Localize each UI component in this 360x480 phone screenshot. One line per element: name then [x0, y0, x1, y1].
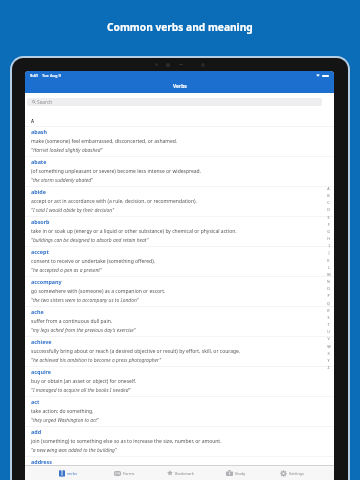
- staticText: E: [327, 215, 330, 220]
- staticText: B: [327, 193, 330, 198]
- staticText: L: [328, 265, 330, 270]
- button[interactable]: Settings: [264, 466, 320, 480]
- staticText: "my legs ached from the previous day's e…: [31, 327, 136, 334]
- staticText: take in or soak up (energy or a liquid o…: [31, 228, 237, 235]
- button[interactable]: accompany: [25, 277, 334, 306]
- staticText: "I said I would abide by their decision": [31, 207, 115, 214]
- staticText: F: [328, 222, 330, 227]
- staticText: G: [327, 229, 330, 234]
- staticText: add: [31, 428, 42, 435]
- staticText: "I managed to acquire all the books I ne…: [31, 387, 131, 394]
- staticText: Z: [327, 365, 330, 370]
- staticText: N: [327, 279, 330, 284]
- button[interactable]: Bookmark: [152, 466, 208, 480]
- staticText: U: [327, 329, 330, 334]
- staticText: I: [328, 243, 330, 248]
- staticText: R: [327, 308, 330, 313]
- staticText: Q: [327, 301, 330, 306]
- staticText: take action; do something.: [31, 408, 94, 415]
- staticText: Forms: [123, 471, 135, 476]
- staticText: Search: [37, 99, 53, 106]
- staticText: acquire: [31, 368, 52, 375]
- button[interactable]: achieve: [25, 337, 334, 366]
- staticText: Study: [235, 471, 246, 476]
- staticText: V: [327, 336, 330, 341]
- button[interactable]: ache: [25, 307, 334, 336]
- staticText: "they urged Washington to act": [31, 417, 99, 424]
- button[interactable]: abate: [25, 157, 334, 186]
- staticText: Y: [327, 358, 330, 363]
- button[interactable]: acquire: [25, 367, 334, 396]
- staticText: (of something unpleasant or severe) beco…: [31, 168, 202, 175]
- staticText: "a new wing was added to the building": [31, 447, 117, 454]
- staticText: J: [328, 250, 330, 255]
- staticText: abide: [31, 188, 46, 195]
- staticText: successfully bring about or reach (a des…: [31, 348, 241, 355]
- staticText: "the two sisters were to accompany us to…: [31, 297, 139, 304]
- staticText: C: [327, 200, 330, 205]
- staticText: P: [327, 293, 330, 298]
- button[interactable]: abide: [25, 187, 334, 216]
- staticText: D: [327, 207, 330, 212]
- button[interactable]: Search: [27, 98, 322, 106]
- staticText: "he accepted a pen as a present": [31, 267, 102, 274]
- button[interactable]: Study: [208, 466, 264, 480]
- button[interactable]: add: [25, 427, 334, 456]
- staticText: abash: [31, 128, 48, 135]
- staticText: H: [327, 236, 330, 241]
- staticText: make (someone) feel embarrassed, disconc…: [31, 138, 178, 145]
- staticText: Settings: [289, 471, 304, 476]
- staticText: S: [327, 315, 330, 320]
- button[interactable]: verbs: [40, 466, 96, 480]
- staticText: achieve: [31, 338, 52, 345]
- staticText: W: [327, 344, 331, 349]
- staticText: accept or act in accordance with (a rule…: [31, 198, 197, 205]
- button[interactable]: accept: [25, 247, 334, 276]
- staticText: Common verbs and meaning: [107, 20, 253, 34]
- staticText: O: [327, 286, 330, 291]
- staticText: A: [31, 118, 35, 124]
- staticText: verbs: [67, 471, 78, 476]
- staticText: T: [327, 322, 330, 327]
- button[interactable]: absorb: [25, 217, 334, 246]
- staticText: Bookmark: [175, 471, 194, 476]
- staticText: K: [327, 258, 330, 263]
- staticText: "Harriet looked slightly abashed": [31, 147, 103, 154]
- staticText: "he achieved his ambition to become a pr…: [31, 357, 162, 364]
- staticText: abate: [31, 158, 47, 165]
- staticText: A: [327, 186, 330, 191]
- staticText: address: [31, 458, 52, 465]
- staticText: 9:41: [30, 73, 38, 78]
- staticText: buy or obtain (an asset or object) for o…: [31, 378, 137, 385]
- button[interactable]: abash: [25, 127, 334, 156]
- staticText: accompany: [31, 278, 62, 285]
- staticText: suffer from a continuous dull pain.: [31, 318, 113, 325]
- staticText: accept: [31, 248, 49, 255]
- staticText: absorb: [31, 218, 50, 225]
- staticText: go somewhere with (someone) as a compani…: [31, 288, 166, 295]
- staticText: X: [327, 351, 330, 356]
- staticText: ache: [31, 308, 44, 315]
- button[interactable]: Forms: [96, 466, 152, 480]
- staticText: Tue Aug 9: [42, 73, 61, 78]
- staticText: "buildings can be designed to absorb and…: [31, 237, 149, 244]
- staticText: "the storm suddenly abated": [31, 177, 93, 184]
- staticText: M: [327, 272, 331, 277]
- staticText: act: [31, 398, 40, 405]
- staticText: Verbs: [173, 83, 187, 90]
- button[interactable]: act: [25, 397, 334, 426]
- staticText: join (something) to something else so as…: [31, 438, 222, 445]
- staticText: consent to receive or undertake (somethi…: [31, 258, 155, 265]
